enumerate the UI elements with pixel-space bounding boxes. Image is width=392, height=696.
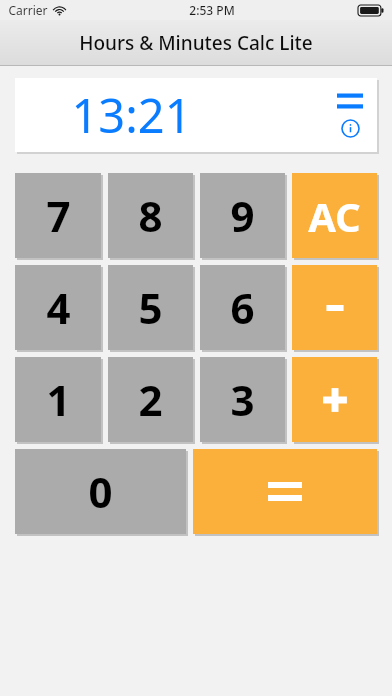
- staticText: 4: [46, 279, 71, 336]
- button[interactable]: 6: [200, 265, 285, 350]
- button[interactable]: 13:21: [15, 78, 377, 152]
- staticText: 13:21: [71, 83, 192, 147]
- staticText: 5: [138, 279, 163, 336]
- button[interactable]: 2: [108, 357, 193, 442]
- button[interactable]: 9: [200, 173, 285, 258]
- button[interactable]: Equals: [333, 90, 367, 112]
- staticText: AC: [308, 189, 361, 243]
- button[interactable]: 4: [15, 265, 101, 350]
- staticText: Hours & Minutes Calc Lite: [79, 30, 313, 56]
- staticText: 2: [138, 371, 163, 428]
- button[interactable]: 8: [108, 173, 193, 258]
- button[interactable]: 0: [15, 449, 186, 534]
- staticText: 1: [46, 371, 71, 428]
- button[interactable]: 1: [15, 357, 101, 442]
- button[interactable]: Info: [338, 116, 362, 140]
- staticText: 3: [230, 371, 255, 428]
- button[interactable]: Minus: [292, 265, 377, 350]
- staticText: 2:53 PM: [189, 2, 235, 18]
- staticText: 8: [138, 187, 163, 244]
- staticText: 6: [230, 279, 255, 336]
- button[interactable]: AC: [292, 173, 377, 258]
- button[interactable]: 3: [200, 357, 285, 442]
- button[interactable]: Equals: [193, 449, 377, 534]
- staticText: Carrier: [8, 2, 48, 18]
- staticText: 9: [230, 187, 255, 244]
- staticText: 7: [46, 187, 71, 244]
- button[interactable]: 7: [15, 173, 101, 258]
- button[interactable]: 5: [108, 265, 193, 350]
- staticText: 0: [88, 463, 113, 520]
- button[interactable]: Plus: [292, 357, 377, 442]
